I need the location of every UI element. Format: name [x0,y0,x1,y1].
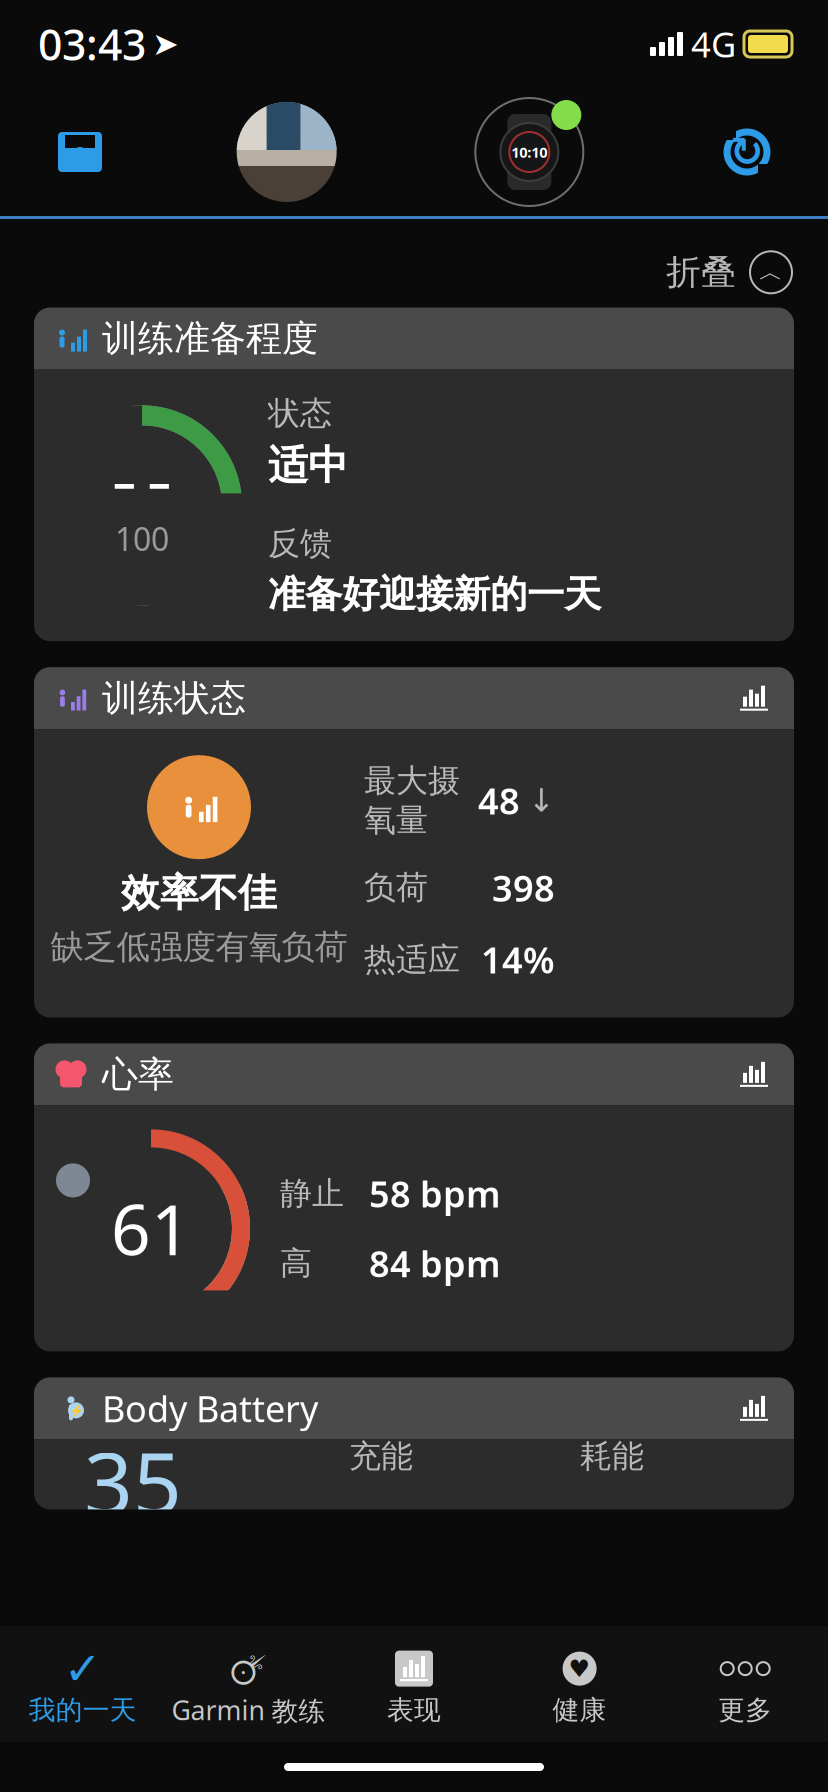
staticText: 100 [115,517,169,560]
button[interactable]: 更多 [662,1646,828,1732]
staticText: Garmin 教练 [171,1692,325,1728]
button[interactable]: ✓ [0,1646,166,1732]
button[interactable]: 心率 [34,1043,794,1351]
staticText: ➤ [152,26,179,62]
staticText: 🜚 [229,1630,267,1704]
button[interactable]: ♥ [497,1646,662,1732]
button[interactable]: ⚡ [34,1377,794,1509]
staticText: 状态 [268,394,332,433]
staticText: ♥ [569,1655,591,1682]
staticText: 缺乏低强度有氧负荷 [50,927,347,968]
staticText: 充能 [349,1437,413,1476]
staticText: 适中 [268,441,348,490]
staticText: 58 bpm [369,1170,501,1217]
staticText: 准备好迎接新的一天 [268,571,601,617]
staticText: ↻ [730,129,764,175]
staticText: 03:43 [38,16,146,72]
staticText: 热适应 [364,940,460,979]
staticText: 负荷 [364,868,428,907]
staticText: 48 [478,777,520,824]
button[interactable]: 通知收件箱 [56,130,104,174]
staticText: 4G [691,21,736,67]
button[interactable]: 训练状态 [34,667,794,1017]
button[interactable]: 已连接的手表 [469,92,589,212]
button[interactable]: 个人头像 [237,102,337,202]
staticText: 静止 [280,1174,344,1213]
staticText: 表现 [387,1694,441,1726]
staticText: 10:10 [511,142,547,162]
staticText: 效率不佳 [121,869,277,917]
staticText: ✓ [64,1643,102,1694]
staticText: ↓ [528,782,555,819]
button[interactable]: 同步 [722,127,772,177]
staticText: 训练状态 [102,676,246,720]
button[interactable]: 查看图表 [734,681,774,715]
staticText: 我的一天 [29,1694,137,1726]
staticText: 训练准备程度 [102,316,318,361]
staticText: 反馈 [268,524,332,563]
staticText: 更多 [718,1694,772,1726]
button[interactable]: 🜚 [166,1644,331,1734]
staticText: 61 [111,1182,191,1274]
staticText: ︿ [759,258,783,287]
button[interactable]: 训练准备程度 [34,308,794,641]
staticText: 高 [280,1244,312,1283]
button[interactable]: 折叠 [666,237,792,308]
staticText: 14% [481,936,555,983]
staticText: 心率 [102,1052,174,1096]
staticText: 最大摄氧量 [364,761,460,840]
staticText: 健康 [553,1694,607,1726]
staticText: ⚡ [68,1403,83,1417]
staticText: 耗能 [580,1437,644,1476]
staticText: 84 bpm [369,1239,501,1287]
staticText: Body Battery [102,1384,318,1432]
staticText: – – [113,451,171,511]
button[interactable]: 表现 [331,1646,497,1732]
staticText: 折叠 [666,251,736,294]
button[interactable]: 查看图表 [734,1391,774,1425]
button[interactable]: 查看图表 [734,1057,774,1091]
staticText: 398 [492,864,555,912]
staticText: 35 [84,1425,182,1538]
